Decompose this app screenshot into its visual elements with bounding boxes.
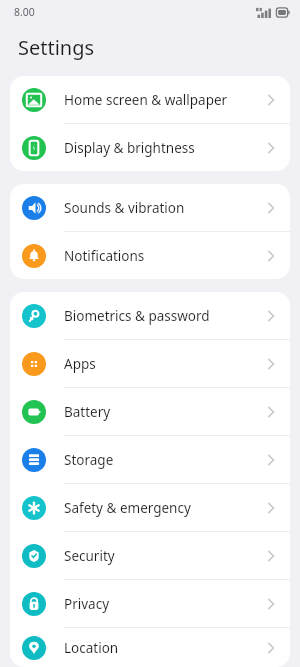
button[interactable]: Apps: [10, 340, 290, 387]
button[interactable]: Privacy: [10, 580, 290, 627]
staticText: Notifications: [64, 247, 145, 265]
button[interactable]: Notifications: [10, 232, 290, 279]
staticText: Battery: [64, 403, 111, 421]
button[interactable]: Storage: [10, 436, 290, 483]
staticText: Privacy: [64, 595, 110, 613]
staticText: Security: [64, 547, 115, 565]
staticText: Location: [64, 639, 119, 657]
staticText: Safety & emergency: [64, 499, 191, 517]
staticText: Display & brightness: [64, 139, 195, 157]
button[interactable]: Location: [10, 628, 290, 667]
button[interactable]: Security: [10, 532, 290, 579]
button[interactable]: Home screen & wallpaper: [10, 76, 290, 123]
staticText: Biometrics & password: [64, 307, 210, 325]
button[interactable]: Biometrics & password: [10, 292, 290, 339]
button[interactable]: Display & brightness: [10, 124, 290, 171]
button[interactable]: Sounds & vibration: [10, 184, 290, 231]
staticText: Settings: [18, 34, 95, 61]
button[interactable]: Battery: [10, 388, 290, 435]
button[interactable]: Safety & emergency: [10, 484, 290, 531]
staticText: Storage: [64, 451, 114, 469]
staticText: Sounds & vibration: [64, 199, 185, 217]
staticText: Home screen & wallpaper: [64, 91, 228, 109]
staticText: Apps: [64, 355, 96, 373]
staticText: 8.00: [14, 5, 35, 19]
